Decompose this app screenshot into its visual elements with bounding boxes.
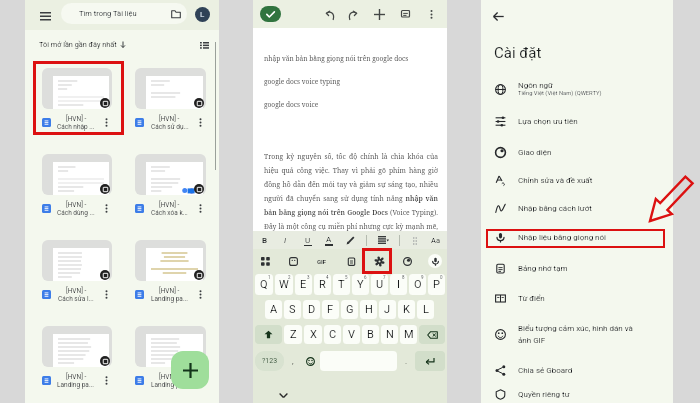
button[interactable]: [HVN] - — [135, 370, 206, 391]
button[interactable]: Tìm trong Tài liệu — [61, 3, 187, 24]
button[interactable]: Biểu tượng cảm xúc, hình dán và ảnh GIF — [494, 313, 663, 355]
button[interactable]: A — [265, 300, 282, 319]
button[interactable]: X — [304, 325, 322, 344]
button[interactable]: Tôi mở lần gần đây nhất — [39, 40, 126, 49]
button[interactable]: B — [362, 325, 379, 344]
button[interactable]: Highlight — [343, 233, 357, 247]
button[interactable] — [42, 326, 112, 367]
button[interactable]: L — [417, 300, 434, 319]
button[interactable]: Emoji — [302, 351, 318, 371]
button[interactable]: S — [284, 300, 301, 319]
button[interactable]: [HVN] - — [42, 370, 112, 391]
button[interactable]: Clipboard — [344, 254, 358, 268]
button[interactable]: List view — [197, 38, 211, 52]
button[interactable]: [HVN] - — [42, 112, 112, 133]
button[interactable] — [42, 68, 112, 109]
button[interactable]: Chia sẻ Gboard — [494, 355, 663, 385]
button[interactable]: Folder — [169, 7, 182, 20]
button[interactable]: Shift — [255, 325, 282, 344]
button[interactable]: Back — [489, 7, 507, 25]
button[interactable]: W — [275, 274, 293, 295]
button[interactable]: Quyền riêng tư — [494, 385, 663, 403]
button[interactable]: [HVN] - — [135, 284, 206, 305]
button[interactable]: Voice input — [428, 254, 442, 268]
button[interactable]: V — [343, 325, 360, 344]
button[interactable] — [42, 154, 112, 195]
button[interactable]: Done — [260, 6, 281, 22]
button[interactable]: Y — [352, 274, 369, 295]
button[interactable]: More options — [101, 375, 112, 386]
button[interactable]: GIF — [314, 253, 330, 269]
button[interactable]: U — [371, 274, 388, 295]
button[interactable]: More options — [101, 289, 112, 300]
button[interactable]: More options — [195, 117, 206, 128]
button[interactable]: R — [314, 274, 331, 295]
button[interactable]: P — [428, 274, 445, 295]
button[interactable]: G — [341, 300, 358, 319]
button[interactable]: [HVN] - — [42, 284, 112, 305]
button[interactable]: Comment — [398, 7, 413, 22]
button[interactable]: More options — [101, 203, 112, 214]
button[interactable]: Settings — [372, 254, 386, 268]
button[interactable]: Undo — [322, 7, 337, 22]
button[interactable]: F — [322, 300, 339, 319]
button[interactable]: Nhập liệu bằng giọng nói — [494, 222, 663, 253]
button[interactable]: Ngôn ngữ — [494, 73, 663, 105]
button[interactable] — [135, 154, 206, 195]
button[interactable]: [HVN] - — [135, 112, 206, 133]
button[interactable]: Text style — [428, 233, 442, 247]
button[interactable]: , — [286, 351, 300, 371]
button[interactable] — [135, 240, 206, 281]
button[interactable]: Apps — [258, 254, 272, 268]
button[interactable]: Hide keyboard — [275, 387, 291, 403]
button[interactable]: Align — [375, 232, 391, 248]
button[interactable]: D — [303, 300, 320, 319]
button[interactable]: Themes — [400, 254, 414, 268]
button[interactable]: Từ điển — [494, 283, 663, 313]
button[interactable]: More options — [424, 7, 439, 22]
button[interactable]: Lists — [409, 235, 420, 246]
button[interactable]: Menu — [35, 5, 56, 26]
button[interactable]: O — [409, 274, 426, 295]
button[interactable]: . — [399, 351, 413, 371]
button[interactable]: More options — [195, 289, 206, 300]
button[interactable] — [42, 240, 112, 281]
button[interactable] — [135, 68, 206, 109]
button[interactable]: U — [301, 234, 314, 247]
button[interactable]: More options — [195, 375, 206, 386]
button[interactable]: C — [324, 325, 341, 344]
button[interactable]: More options — [101, 117, 112, 128]
button[interactable]: ?123 — [255, 351, 284, 371]
button[interactable]: Chỉnh sửa và đề xuất — [494, 166, 663, 194]
button[interactable]: Q — [255, 274, 273, 295]
button[interactable]: I — [390, 274, 407, 295]
button[interactable]: M — [400, 325, 417, 344]
button[interactable]: J — [379, 300, 396, 319]
button[interactable]: More options — [195, 203, 206, 214]
button[interactable]: K — [398, 300, 415, 319]
button[interactable]: B — [258, 234, 271, 247]
button[interactable]: New document — [171, 351, 209, 389]
button[interactable]: Stickers — [286, 254, 300, 268]
button[interactable]: A — [322, 234, 335, 247]
button[interactable]: Nhập bằng cách lướt — [494, 194, 663, 222]
button[interactable] — [135, 326, 206, 367]
staticText: J — [384, 303, 391, 316]
button[interactable]: H — [360, 300, 377, 319]
button[interactable]: Lựa chọn ưu tiên — [494, 105, 663, 138]
button[interactable]: [HVN] - — [135, 198, 206, 219]
button[interactable]: I — [279, 234, 292, 247]
button[interactable]: N — [381, 325, 398, 344]
button[interactable]: Backspace — [419, 325, 445, 344]
button[interactable]: [HVN] - — [42, 198, 112, 219]
button[interactable]: Bảng nhớ tạm — [494, 253, 663, 283]
button[interactable]: Add — [372, 7, 387, 22]
button[interactable]: Giao diện — [494, 138, 663, 166]
button[interactable]: T — [333, 274, 350, 295]
button[interactable]: Account — [195, 7, 210, 22]
button[interactable]: Z — [284, 325, 302, 344]
button[interactable]: E — [295, 274, 312, 295]
button[interactable]: Redo — [345, 7, 360, 22]
button[interactable]: Enter — [415, 351, 445, 371]
